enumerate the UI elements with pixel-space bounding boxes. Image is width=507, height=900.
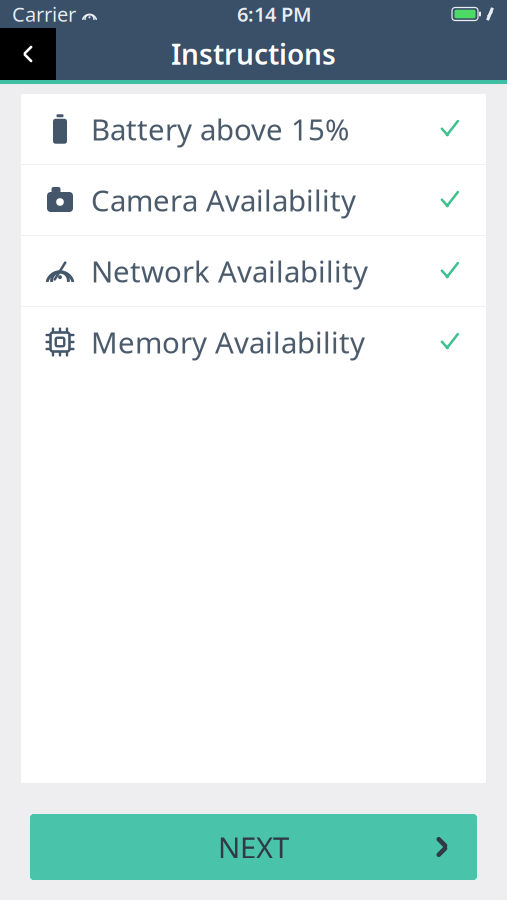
staticText: NEXT	[218, 827, 289, 866]
button[interactable]: Back	[0, 28, 56, 80]
button[interactable]: NEXT	[30, 814, 477, 880]
button[interactable]: Network Availability	[21, 236, 486, 306]
button[interactable]: Memory Availability	[21, 307, 486, 377]
button[interactable]: Battery above 15%	[21, 94, 486, 164]
staticText: Camera Availability	[91, 180, 356, 219]
staticText: Carrier	[12, 1, 76, 27]
staticText: 6:14 PM	[237, 1, 312, 27]
staticText: Network Availability	[91, 251, 368, 290]
button[interactable]: Camera Availability	[21, 165, 486, 235]
staticText: Instructions	[171, 35, 336, 73]
staticText: Battery above 15%	[91, 109, 349, 148]
staticText: Memory Availability	[91, 322, 365, 361]
